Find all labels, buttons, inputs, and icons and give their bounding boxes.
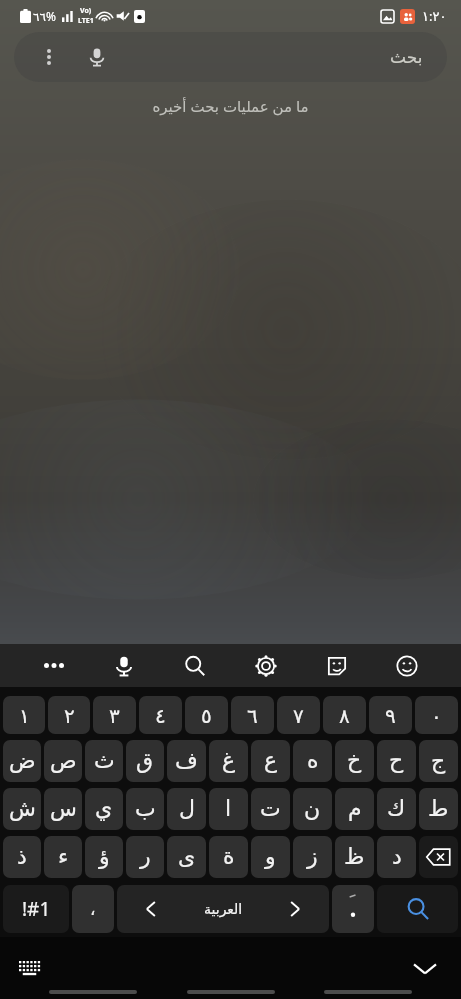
- staticText: ك: [387, 796, 406, 822]
- button[interactable]: ؤ: [85, 836, 123, 878]
- button[interactable]: ٦: [231, 696, 274, 734]
- button[interactable]: ٧: [277, 696, 320, 734]
- staticText: ،: [90, 899, 96, 919]
- button[interactable]: ف: [167, 740, 206, 782]
- staticText: ض: [9, 748, 36, 774]
- button[interactable]: ى: [167, 836, 206, 878]
- staticText: ش: [9, 796, 36, 822]
- staticText: غ: [222, 748, 236, 774]
- button[interactable]: ل: [167, 788, 206, 830]
- button[interactable]: ب: [126, 788, 164, 830]
- button[interactable]: ظ: [335, 836, 374, 878]
- button[interactable]: Emoji: [384, 644, 430, 687]
- button[interactable]: More options: [36, 44, 62, 70]
- button[interactable]: Backspace: [419, 836, 458, 878]
- staticText: ٦: [247, 704, 258, 727]
- button[interactable]: Search: [377, 885, 458, 933]
- button[interactable]: ط: [419, 788, 458, 830]
- button[interactable]: Close keyboard: [405, 948, 445, 988]
- button[interactable]: ء: [44, 836, 82, 878]
- staticText: ط: [428, 796, 449, 822]
- button[interactable]: م: [335, 788, 374, 830]
- staticText: ٤: [155, 704, 166, 727]
- staticText: ا: [225, 796, 232, 822]
- staticText: ر: [140, 844, 151, 870]
- staticText: م: [348, 796, 362, 822]
- staticText: ٩: [385, 704, 396, 727]
- button[interactable]: Stickers: [314, 644, 360, 687]
- button[interactable]: ذ: [3, 836, 41, 878]
- button[interactable]: Hide keyboard: [10, 948, 50, 988]
- button[interactable]: ض: [3, 740, 41, 782]
- staticText: Vo): [80, 6, 92, 16]
- button[interactable]: [332, 885, 374, 933]
- staticText: !#1: [22, 896, 51, 922]
- staticText: س: [50, 796, 77, 822]
- staticText: ق: [136, 748, 154, 774]
- staticText: ف: [175, 748, 198, 774]
- staticText: ة: [223, 844, 235, 870]
- staticText: ؤ: [99, 844, 110, 870]
- staticText: ما من عمليات بحث أخيره: [0, 96, 461, 116]
- button[interactable]: ص: [44, 740, 82, 782]
- button[interactable]: س: [44, 788, 82, 830]
- staticText: ز: [307, 844, 318, 870]
- button[interactable]: ث: [85, 740, 123, 782]
- button[interactable]: ٥: [185, 696, 228, 734]
- staticText: ن: [304, 796, 321, 822]
- button[interactable]: ن: [293, 788, 332, 830]
- staticText: ٠: [431, 704, 442, 727]
- staticText: ص: [50, 748, 77, 774]
- button[interactable]: خ: [335, 740, 374, 782]
- button[interactable]: ع: [251, 740, 290, 782]
- staticText: ح: [389, 748, 404, 774]
- button[interactable]: و: [251, 836, 290, 878]
- staticText: ٣: [109, 704, 120, 727]
- button[interactable]: ت: [251, 788, 290, 830]
- staticText: LTE1: [78, 16, 94, 26]
- button[interactable]: ١: [3, 696, 45, 734]
- button[interactable]: ٣: [93, 696, 136, 734]
- button[interactable]: ه: [293, 740, 332, 782]
- button[interactable]: العربية: [117, 885, 329, 933]
- staticText: ٢: [64, 704, 75, 727]
- button[interactable]: غ: [209, 740, 248, 782]
- staticText: ٦٦%: [33, 8, 56, 24]
- staticText: العربية: [204, 901, 243, 917]
- button[interactable]: Search: [172, 644, 218, 687]
- staticText: بحث: [390, 47, 423, 67]
- staticText: ى: [178, 844, 196, 870]
- button[interactable]: ق: [126, 740, 164, 782]
- staticText: ١: [19, 704, 30, 727]
- staticText: ع: [264, 748, 278, 774]
- button[interactable]: ٩: [369, 696, 412, 734]
- staticText: ه: [307, 748, 319, 774]
- staticText: ب: [135, 796, 156, 822]
- button[interactable]: Voice search: [82, 42, 112, 72]
- button[interactable]: ا: [209, 788, 248, 830]
- staticText: و: [265, 844, 276, 870]
- button[interactable]: ٢: [48, 696, 90, 734]
- staticText: ظ: [344, 844, 365, 870]
- button[interactable]: ر: [126, 836, 164, 878]
- button[interactable]: ٨: [323, 696, 366, 734]
- button[interactable]: Settings: [243, 644, 289, 687]
- button[interactable]: ج: [419, 740, 458, 782]
- button[interactable]: !#1: [3, 885, 69, 933]
- staticText: د: [392, 844, 402, 870]
- button[interactable]: ز: [293, 836, 332, 878]
- button[interactable]: ٤: [139, 696, 182, 734]
- button[interactable]: ي: [85, 788, 123, 830]
- button[interactable]: Voice input: [101, 644, 147, 687]
- staticText: ي: [95, 796, 113, 822]
- button[interactable]: More: [31, 644, 77, 687]
- button[interactable]: ة: [209, 836, 248, 878]
- button[interactable]: ٠: [415, 696, 458, 734]
- button[interactable]: More options: [14, 32, 447, 82]
- staticText: ج: [431, 748, 446, 774]
- button[interactable]: ك: [377, 788, 416, 830]
- button[interactable]: ح: [377, 740, 416, 782]
- button[interactable]: ،: [72, 885, 114, 933]
- button[interactable]: د: [377, 836, 416, 878]
- button[interactable]: ش: [3, 788, 41, 830]
